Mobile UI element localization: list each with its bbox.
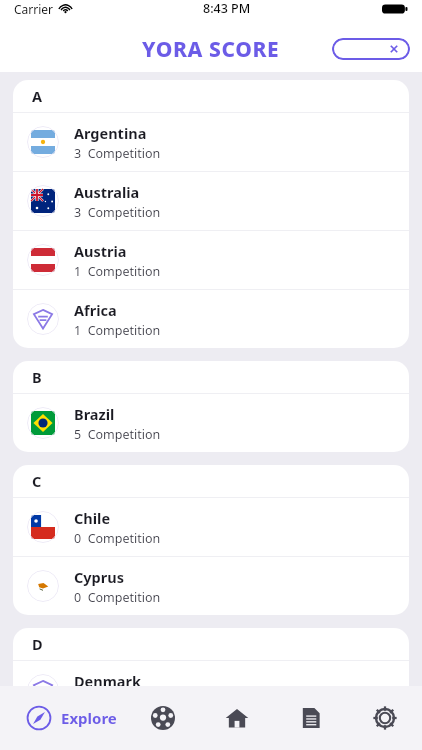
staticText: Australia	[74, 182, 140, 202]
staticText: 5 Competition	[74, 426, 161, 443]
staticText: Austria	[74, 241, 127, 261]
staticText: 2 Competition	[74, 693, 161, 710]
staticText: D	[32, 634, 43, 654]
button[interactable]: Australia	[13, 172, 409, 230]
button[interactable]: Austria	[13, 231, 409, 289]
staticText: Denmark	[74, 671, 141, 691]
staticText: 1 Competition	[74, 263, 161, 280]
staticText: 0 Competition	[74, 589, 161, 606]
button[interactable]: Close search	[332, 38, 410, 60]
staticText: Carrier	[14, 1, 54, 17]
staticText: A	[32, 86, 43, 106]
staticText: 0 Competition	[74, 530, 161, 547]
staticText: Africa	[74, 300, 117, 320]
button[interactable]: Brazil	[13, 394, 409, 452]
staticText: Argentina	[74, 123, 147, 143]
staticText: Cyprus	[74, 567, 124, 587]
staticText: B	[32, 367, 42, 387]
button[interactable]: Explore	[0, 686, 126, 750]
staticText: 8:43 PM	[203, 0, 251, 17]
button[interactable]: News	[274, 686, 348, 750]
staticText: C	[32, 471, 42, 491]
button[interactable]: Argentina	[13, 113, 409, 171]
button[interactable]: Settings	[348, 686, 422, 750]
staticText: YORA SCORE	[142, 35, 280, 64]
button[interactable]: Africa	[13, 290, 409, 348]
button[interactable]: Matches	[126, 686, 200, 750]
staticText: Brazil	[74, 404, 115, 424]
button[interactable]: Home	[200, 686, 274, 750]
button[interactable]: Denmark	[13, 661, 409, 719]
staticText: Chile	[74, 508, 111, 528]
button[interactable]: Chile	[13, 498, 409, 556]
button[interactable]: Cyprus	[13, 557, 409, 615]
staticText: 1 Competition	[74, 322, 161, 339]
staticText: 3 Competition	[74, 204, 161, 221]
staticText: 3 Competition	[74, 145, 161, 162]
staticText: Explore	[61, 708, 117, 728]
